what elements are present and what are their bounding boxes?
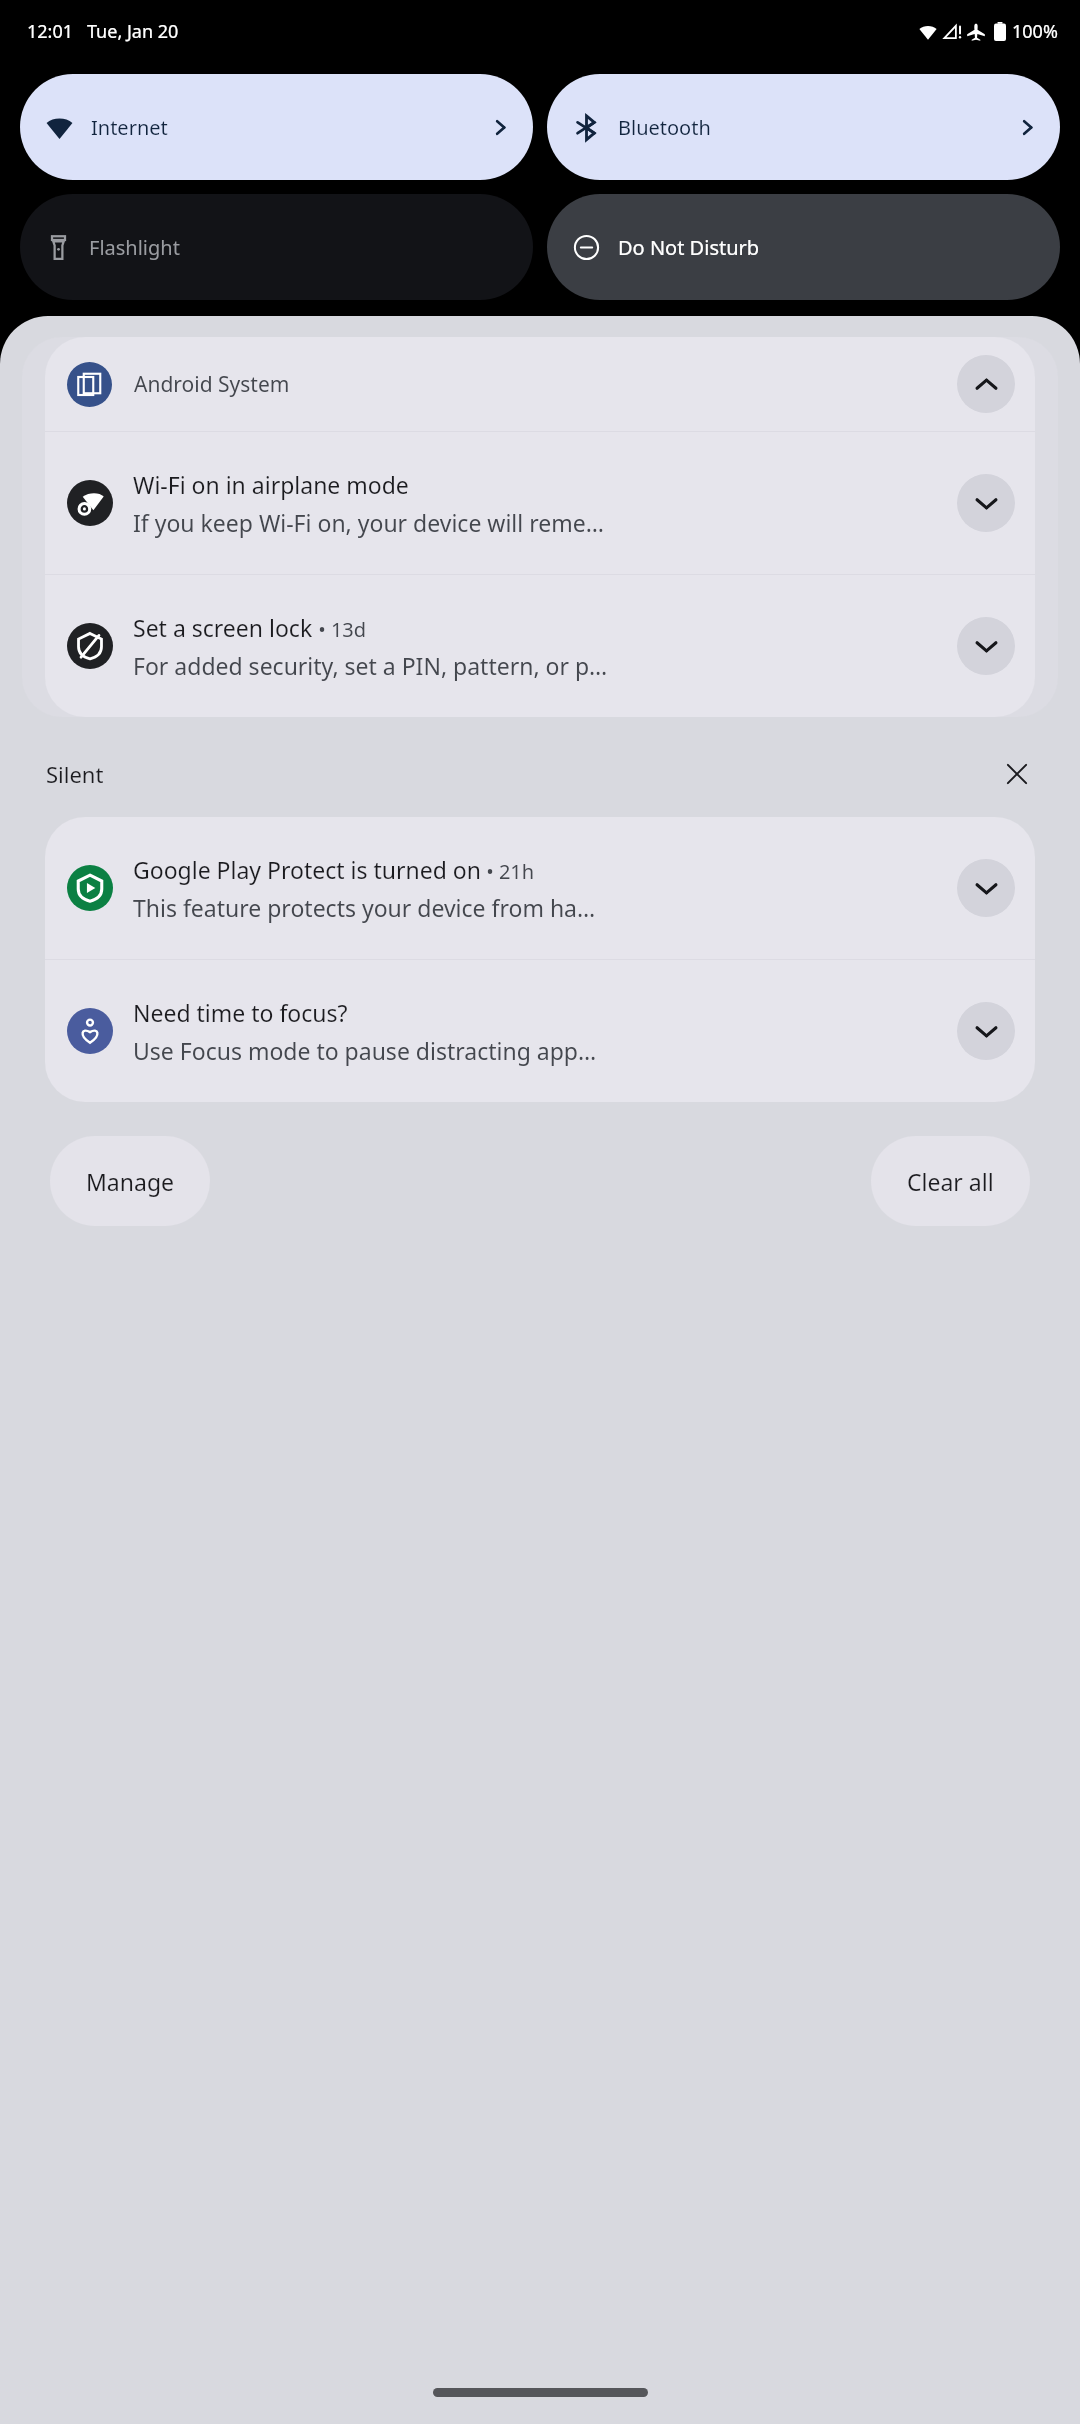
staticText: Set a screen lock [133, 612, 313, 643]
staticText: Bluetooth [618, 114, 711, 141]
button[interactable]: Collapse [957, 355, 1015, 413]
staticText: Need time to focus? [133, 997, 348, 1028]
staticText: 12:01 [27, 19, 74, 44]
button[interactable]: Android System [45, 337, 1035, 431]
button[interactable]: Google Play Protect is turned on [45, 817, 1035, 959]
staticText: Android System [134, 370, 290, 399]
button[interactable]: Bluetooth [547, 74, 1060, 180]
staticText: Use Focus mode to pause distracting app… [133, 1035, 597, 1066]
button[interactable]: Expand [957, 474, 1015, 532]
staticText: • 21h [481, 858, 535, 885]
button[interactable]: Clear all [871, 1136, 1030, 1226]
button[interactable]: Manage [50, 1136, 210, 1226]
staticText: For added security, set a PIN, pattern, … [133, 650, 608, 681]
button[interactable]: Wi-Fi on in airplane mode [45, 432, 1035, 574]
button[interactable]: Expand [957, 1002, 1015, 1060]
staticText: Flashlight [89, 234, 180, 261]
staticText: Do Not Disturb [618, 234, 760, 261]
staticText: This feature protects your device from h… [133, 892, 596, 923]
staticText: Internet [91, 114, 168, 141]
staticText: Manage [86, 1166, 174, 1197]
staticText: Clear all [907, 1166, 994, 1197]
button[interactable]: Internet [20, 74, 533, 180]
button[interactable]: Do Not Disturb [547, 194, 1060, 300]
button[interactable]: Flashlight [20, 194, 533, 300]
staticText: Tue, Jan 20 [87, 19, 179, 44]
staticText: If you keep Wi-Fi on, your device will r… [133, 507, 604, 538]
staticText: Silent [46, 759, 104, 789]
staticText: Wi-Fi on in airplane mode [133, 469, 409, 500]
button[interactable]: Expand [957, 859, 1015, 917]
button[interactable]: Need time to focus? [45, 960, 1035, 1102]
staticText: • 13d [313, 616, 367, 643]
button[interactable]: Expand [957, 617, 1015, 675]
staticText: Google Play Protect is turned on [133, 854, 481, 885]
button[interactable]: Clear silent notifications [992, 749, 1042, 799]
button[interactable]: Set a screen lock [45, 575, 1035, 717]
staticText: 100% [1012, 19, 1058, 44]
